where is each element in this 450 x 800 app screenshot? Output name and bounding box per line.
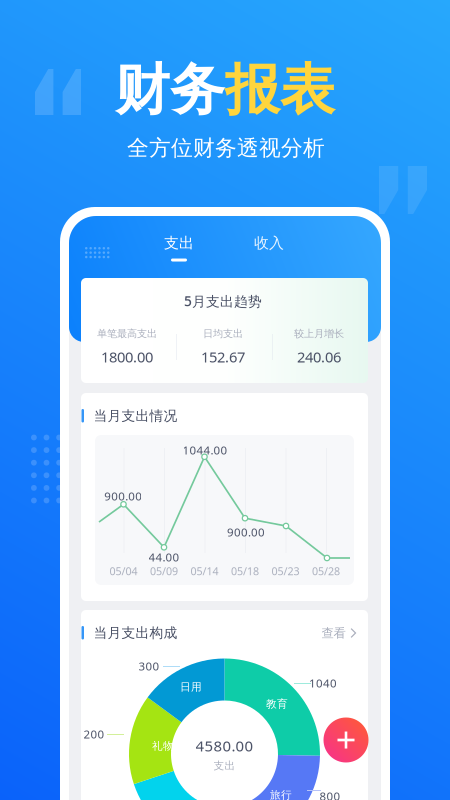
staticText: 1800.00: [101, 347, 153, 367]
button[interactable]: Add: [323, 717, 368, 762]
staticText: 4580.00: [195, 736, 253, 756]
staticText: 支出: [213, 759, 235, 772]
staticText: 较上月增长: [294, 327, 344, 340]
staticText: 单笔最高支出: [97, 327, 157, 340]
staticText: 05/23: [271, 564, 299, 578]
staticText: 200: [83, 726, 104, 742]
staticText: 财务: [115, 56, 225, 124]
staticText: 查看: [321, 625, 345, 641]
staticText: 当月支出构成: [93, 624, 177, 642]
staticText: 05/09: [150, 564, 178, 578]
staticText: 日用: [180, 680, 202, 694]
button[interactable]: 支出: [150, 228, 208, 268]
staticText: 报表: [225, 56, 335, 124]
button[interactable]: 查看: [314, 618, 363, 648]
staticText: 05/28: [312, 564, 340, 578]
staticText: 05/14: [190, 564, 218, 578]
staticText: 05/04: [109, 564, 137, 578]
staticText: 教育: [266, 697, 288, 711]
button[interactable]: 收入: [240, 223, 298, 263]
staticText: 5月支出趋势: [184, 292, 262, 310]
staticText: 1044.00: [182, 442, 227, 458]
staticText: 152.67: [201, 347, 245, 367]
staticText: 300: [138, 658, 159, 674]
staticText: 900.00: [104, 488, 142, 504]
staticText: 05/18: [231, 564, 259, 578]
staticText: 全方位财务透视分析: [127, 134, 325, 162]
staticText: 礼物: [152, 739, 174, 753]
staticText: 800: [319, 788, 340, 800]
staticText: 900.00: [227, 524, 265, 540]
staticText: 当月支出情况: [93, 407, 177, 425]
staticText: 日均支出: [203, 327, 243, 340]
staticText: 支出: [164, 234, 194, 252]
staticText: 1040: [309, 675, 337, 691]
staticText: 240.06: [297, 347, 341, 367]
staticText: 44.00: [148, 549, 179, 565]
staticText: 旅行: [270, 788, 292, 800]
staticText: 收入: [254, 234, 284, 252]
